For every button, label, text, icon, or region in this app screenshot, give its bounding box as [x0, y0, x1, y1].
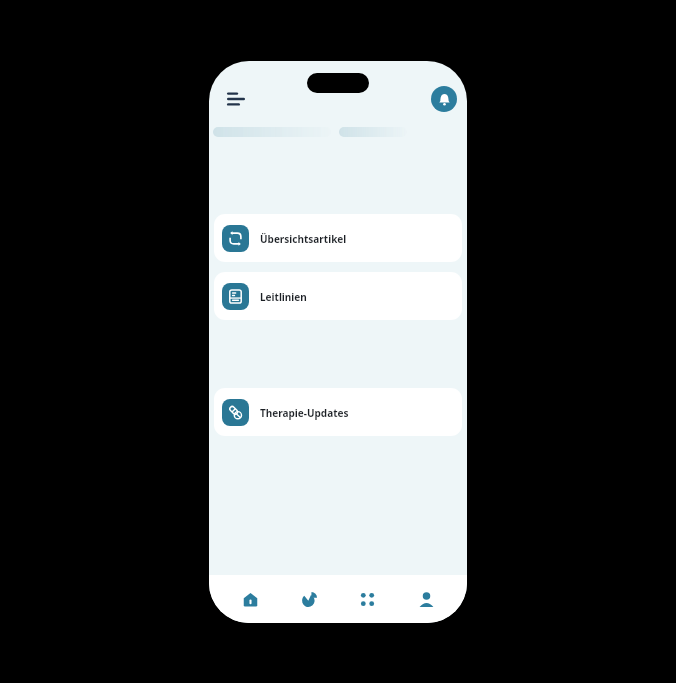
staticText: Leitlinien	[260, 290, 307, 304]
button[interactable]: Statistics	[291, 581, 327, 617]
staticText: Übersichtsartikel	[260, 232, 347, 246]
button[interactable]: Apps	[349, 581, 385, 617]
button[interactable]: Therapie-Updates	[214, 388, 462, 436]
button[interactable]: Leitlinien	[214, 272, 462, 320]
button[interactable]: Übersichtsartikel	[214, 214, 462, 262]
button[interactable]: Menu	[221, 84, 251, 114]
button[interactable]: Home	[232, 581, 268, 617]
staticText: Therapie-Updates	[260, 406, 349, 420]
button[interactable]: Profile	[408, 581, 444, 617]
button[interactable]: Notifications	[431, 86, 457, 112]
